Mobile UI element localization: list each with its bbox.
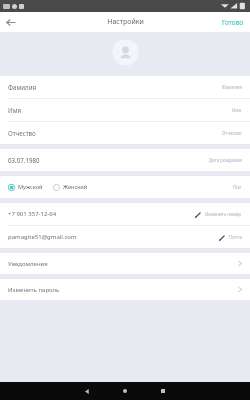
button[interactable]: Недавние (152, 382, 174, 400)
staticText: Пол (233, 184, 242, 190)
staticText: +7 901 357-12-64 (8, 210, 57, 218)
staticText: Изменить номер (205, 211, 242, 217)
button[interactable]: Уведомления (0, 253, 250, 274)
staticText: Отчество (222, 130, 242, 136)
button[interactable]: Отчество (0, 122, 250, 144)
button[interactable]: +7 901 357-12-64 (0, 203, 250, 225)
staticText: Женский (63, 183, 88, 191)
staticText: Имя (232, 107, 242, 113)
staticText: Готово (222, 18, 244, 27)
other: Редактировать (217, 233, 226, 242)
button[interactable]: Фото профиля (111, 38, 140, 67)
other: Редактировать (193, 210, 202, 219)
button[interactable]: Изменить пароль (0, 279, 250, 300)
button[interactable]: 03.07.1980 (0, 149, 250, 171)
button[interactable]: Мужской (8, 183, 43, 191)
staticText: Имя (8, 106, 21, 114)
staticText: Изменить пароль (8, 286, 60, 294)
button[interactable]: Женский (53, 183, 88, 191)
button[interactable]: Имя (0, 99, 250, 122)
staticText: Уведомления (8, 260, 48, 268)
staticText: Настройки (107, 17, 144, 27)
staticText: Отчество (8, 129, 36, 137)
staticText: Фамилия (222, 84, 242, 90)
staticText: Мужской (18, 183, 43, 191)
staticText: pamagite51@gmail.com (8, 233, 77, 241)
button[interactable]: pamagite51@gmail.com (0, 226, 250, 248)
staticText: Фамилия (8, 83, 37, 91)
button[interactable]: Фамилия (0, 76, 250, 99)
staticText: Дата рождения (209, 157, 242, 163)
staticText: Почта (229, 234, 242, 240)
staticText: 03.07.1980 (8, 156, 40, 164)
button[interactable]: Домой (114, 382, 136, 400)
button[interactable]: Готово (216, 14, 250, 31)
button[interactable]: Назад (76, 382, 98, 400)
button[interactable]: Назад (0, 12, 20, 32)
